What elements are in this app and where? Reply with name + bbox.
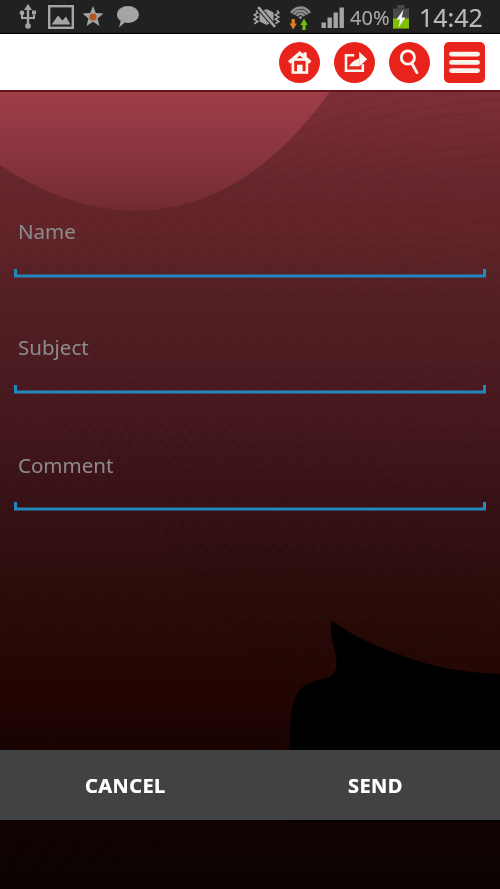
staticText: Comment — [18, 451, 114, 479]
staticText: Subject — [18, 333, 89, 361]
staticText: CANCEL — [85, 772, 166, 799]
staticText: SEND — [348, 772, 403, 799]
staticText: 40% — [350, 4, 390, 31]
button[interactable]: Menu — [444, 42, 485, 83]
staticText: 14:42 — [419, 0, 483, 34]
button[interactable]: Home — [279, 42, 320, 83]
staticText: Name — [18, 217, 76, 245]
button[interactable]: Share — [334, 42, 375, 83]
button[interactable]: Search — [389, 42, 430, 83]
button[interactable]: CANCEL — [0, 750, 250, 820]
button[interactable]: SEND — [250, 750, 500, 820]
